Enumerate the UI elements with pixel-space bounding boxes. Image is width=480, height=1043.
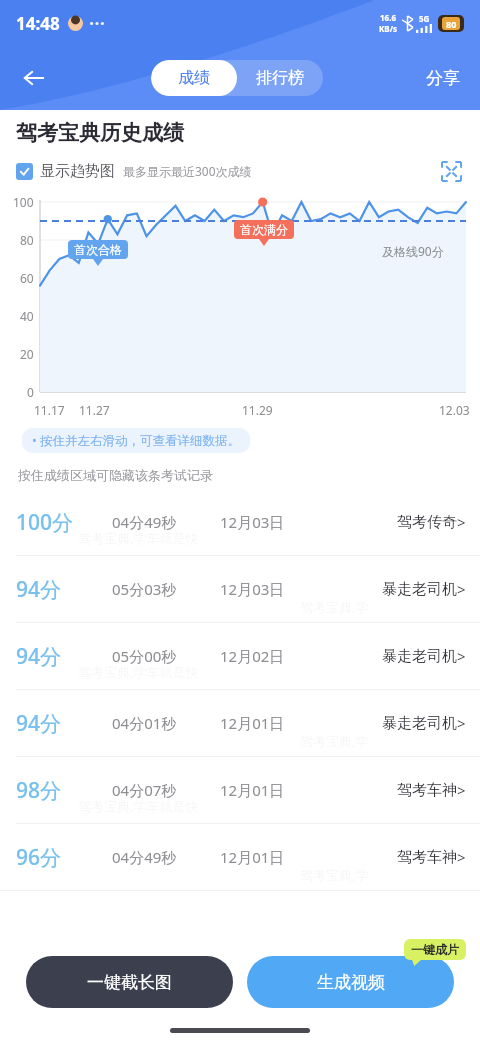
staticText: 16.6 [380, 12, 396, 23]
staticText: 驾考宝典历史成绩 [16, 120, 184, 146]
staticText: • 按住并左右滑动，可查看详细数据。 [32, 432, 240, 449]
staticText: 12月03日 [220, 512, 285, 532]
staticText: 12月01日 [220, 780, 285, 800]
staticText: > [457, 512, 466, 532]
staticText: 一键截长图 [87, 972, 172, 993]
staticText: 11.29 [242, 402, 273, 418]
button[interactable]: 显示趋势图 [16, 162, 115, 181]
staticText: 暴走老司机 [382, 580, 457, 599]
staticText: 生成视频 [317, 972, 385, 993]
button[interactable]: 94分 [0, 690, 480, 756]
staticText: 20 [20, 346, 34, 362]
staticText: 80 [446, 18, 457, 30]
staticText: 5G [419, 13, 430, 24]
staticText: 成绩 [178, 68, 210, 88]
staticText: > [457, 713, 466, 733]
staticText: 驾考宝典,学车就是快 [78, 529, 199, 547]
staticText: > [457, 780, 466, 800]
staticText: 最多显示最近300次成绩 [123, 163, 252, 179]
staticText: 驾考宝典,学车就是快 [78, 797, 199, 815]
button[interactable]: Fullscreen [436, 156, 466, 186]
staticText: 98分 [16, 776, 62, 805]
staticText: 96分 [16, 843, 62, 872]
staticText: 04分01秒 [112, 713, 177, 733]
button[interactable]: 一键截长图 [26, 956, 233, 1008]
staticText: 暴走老司机 [382, 714, 457, 733]
staticText: 首次合格 [74, 242, 122, 257]
button[interactable]: 分享 [420, 62, 466, 95]
staticText: 及格线90分 [382, 243, 444, 259]
staticText: 05分03秒 [112, 579, 177, 599]
staticText: 一键成片 [411, 942, 459, 957]
button[interactable]: 96分 [0, 824, 480, 890]
staticText: 94分 [16, 575, 62, 604]
button[interactable]: Back [14, 58, 54, 98]
staticText: 0 [27, 384, 34, 400]
staticText: 排行榜 [256, 68, 304, 88]
staticText: 11.17 [34, 402, 65, 418]
staticText: 94分 [16, 642, 62, 671]
staticText: 05分00秒 [112, 646, 177, 666]
staticText: 60 [20, 270, 34, 286]
staticText: 驾考车神 [397, 781, 457, 800]
staticText: KB/s [379, 23, 397, 34]
staticText: 11.27 [79, 402, 110, 418]
staticText: 显示趋势图 [40, 162, 115, 181]
button[interactable]: 生成视频 [247, 956, 454, 1008]
staticText: 分享 [426, 68, 460, 89]
staticText: 80 [20, 232, 34, 248]
staticText: 暴走老司机 [382, 647, 457, 666]
staticText: 驾考车神 [397, 848, 457, 867]
staticText: 100 [13, 194, 34, 210]
staticText: > [457, 646, 466, 666]
staticText: 驾考宝典,学车就是快 [78, 663, 199, 681]
staticText: 04分07秒 [112, 780, 177, 800]
staticText: 按住成绩区域可隐藏该条考试记录 [18, 467, 213, 483]
staticText: 94分 [16, 709, 62, 738]
staticText: 12月02日 [220, 646, 285, 666]
staticText: 04分49秒 [112, 847, 177, 867]
staticText: 12月03日 [220, 579, 285, 599]
staticText: 12.03 [439, 402, 470, 418]
staticText: 100分 [16, 508, 74, 537]
button[interactable]: 94分 [0, 556, 480, 622]
button[interactable]: 94分 [0, 623, 480, 689]
staticText: 12月01日 [220, 713, 285, 733]
button[interactable]: 成绩 [151, 60, 237, 96]
staticText: 驾考传奇 [397, 513, 457, 532]
staticText: 14:48 [16, 12, 60, 35]
staticText: 12月01日 [220, 847, 285, 867]
staticText: 04分49秒 [112, 512, 177, 532]
button[interactable]: 98分 [0, 757, 480, 823]
staticText: 40 [20, 308, 34, 324]
staticText: > [457, 579, 466, 599]
staticText: 首次满分 [240, 222, 288, 237]
button[interactable]: 100分 [0, 489, 480, 555]
staticText: > [457, 847, 466, 867]
button[interactable]: 排行榜 [237, 60, 323, 96]
